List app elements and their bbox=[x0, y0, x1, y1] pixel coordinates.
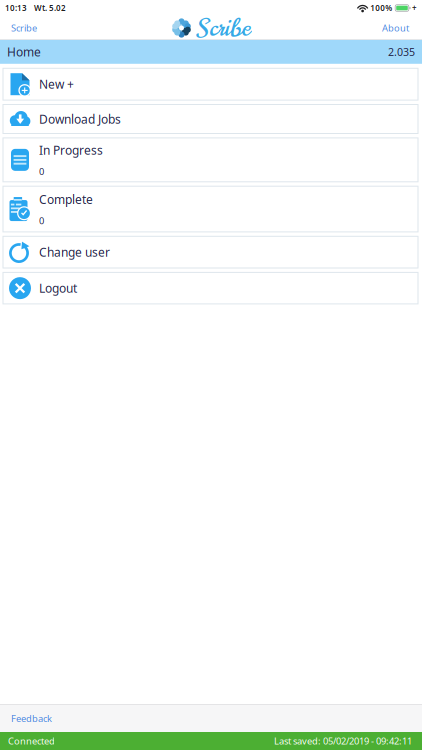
staticText: Logout bbox=[39, 280, 77, 296]
staticText: 0 bbox=[39, 165, 44, 177]
staticText: Connected bbox=[8, 735, 55, 747]
button[interactable]: Download Jobs bbox=[3, 104, 418, 133]
button[interactable]: Logout bbox=[3, 272, 418, 304]
button[interactable]: Feedback bbox=[0, 706, 64, 731]
staticText: 100% bbox=[370, 3, 392, 13]
staticText: + bbox=[412, 3, 417, 13]
staticText: In Progress bbox=[39, 142, 103, 158]
staticText: Scribe bbox=[197, 11, 251, 45]
staticText: New + bbox=[39, 76, 74, 92]
staticText: Last saved: 05/02/2019 - 09:42:11 bbox=[274, 735, 412, 747]
button[interactable]: Scribe bbox=[0, 17, 47, 39]
staticText: Feedback bbox=[11, 712, 52, 725]
staticText: Complete bbox=[39, 191, 93, 207]
staticText: 2.035 bbox=[388, 45, 415, 59]
staticText: Home bbox=[7, 44, 41, 60]
staticText: Download Jobs bbox=[39, 111, 121, 127]
button[interactable]: Complete bbox=[3, 186, 418, 232]
button[interactable]: Change user bbox=[3, 236, 418, 268]
staticText: About bbox=[382, 22, 409, 34]
staticText: Change user bbox=[39, 244, 110, 260]
button[interactable]: About bbox=[372, 17, 422, 39]
button[interactable]: In Progress bbox=[3, 138, 418, 182]
staticText: 10:13 bbox=[5, 3, 27, 13]
staticText: Scribe bbox=[11, 22, 37, 34]
button[interactable]: New + bbox=[3, 68, 418, 100]
staticText: Wt. 5.02 bbox=[34, 3, 66, 13]
staticText: 0 bbox=[39, 214, 44, 227]
